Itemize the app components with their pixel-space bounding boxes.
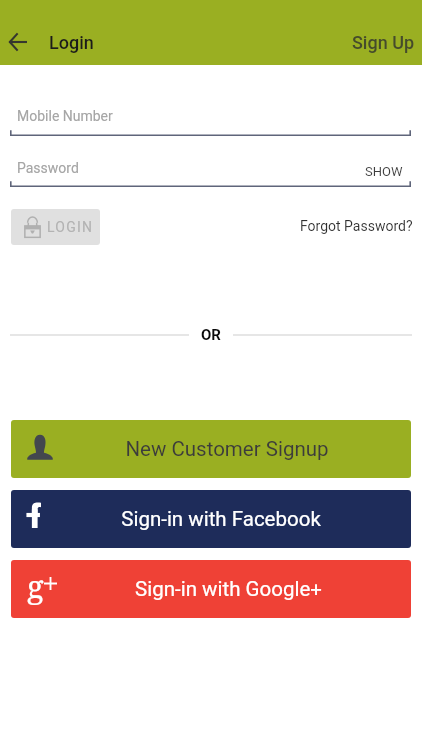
button[interactable]: g <box>11 560 411 618</box>
staticText: g <box>27 565 44 605</box>
button[interactable]: Sign Up <box>342 20 422 65</box>
button[interactable]: New Customer Signup <box>11 420 411 478</box>
staticText: OR <box>201 326 221 344</box>
staticText: Mobile Number <box>17 108 113 124</box>
staticText: Sign-in with Google+ <box>135 577 322 601</box>
button[interactable]: SHOW <box>365 164 422 179</box>
staticText: Password <box>17 160 79 176</box>
button[interactable]: Forgot Password? <box>300 210 422 242</box>
button[interactable]: Back <box>0 24 35 59</box>
staticText: Forgot Password? <box>300 218 413 234</box>
button[interactable]: LOGIN <box>11 209 100 245</box>
staticText: SHOW <box>365 164 403 179</box>
staticText: LOGIN <box>47 219 94 235</box>
staticText: Sign-in with Facebook <box>121 507 321 531</box>
staticText: New Customer Signup <box>125 437 329 461</box>
staticText: Login <box>49 32 94 53</box>
button[interactable]: Sign-in with Facebook <box>11 490 411 548</box>
staticText: Sign Up <box>352 32 415 53</box>
